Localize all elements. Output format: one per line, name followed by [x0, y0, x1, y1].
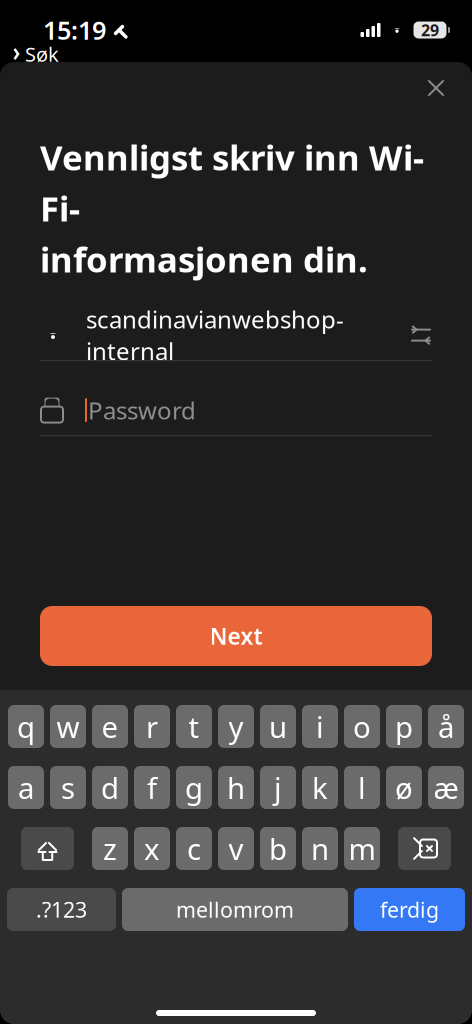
button[interactable]: r [134, 705, 170, 748]
staticText: s [61, 768, 75, 807]
staticText: z [103, 829, 117, 868]
staticText: m [348, 829, 375, 868]
button[interactable]: u [260, 705, 296, 748]
button[interactable]: y [218, 705, 254, 748]
staticText: x [144, 829, 160, 868]
staticText: u [269, 707, 287, 746]
staticText: Søk [25, 41, 59, 67]
staticText: 29 [421, 19, 439, 41]
button[interactable]: f [134, 766, 170, 809]
button[interactable]: l [344, 766, 380, 809]
staticText: a [18, 768, 34, 807]
staticText: y [228, 707, 243, 746]
button[interactable]: j [260, 766, 296, 809]
button[interactable]: i [302, 705, 338, 748]
staticText: å [438, 707, 454, 746]
staticText: h [227, 768, 245, 807]
staticText: q [17, 707, 35, 746]
staticText: æ [433, 768, 458, 807]
staticText: l [358, 768, 366, 807]
staticText: ferdig [380, 895, 439, 924]
button[interactable]: c [176, 827, 212, 870]
button[interactable]: t [176, 705, 212, 748]
staticText: e [101, 707, 118, 746]
staticText: j [274, 768, 282, 807]
staticText: .?123 [36, 895, 87, 924]
staticText: Next [209, 621, 262, 651]
staticText: b [269, 829, 287, 868]
staticText: v [228, 829, 243, 868]
button[interactable]: Skift [21, 827, 74, 870]
staticText: o [353, 707, 371, 746]
button[interactable]: v [218, 827, 254, 870]
button[interactable]: w [50, 705, 86, 748]
staticText: g [185, 768, 203, 807]
button[interactable]: h [218, 766, 254, 809]
button[interactable]: Next [40, 606, 432, 666]
button[interactable]: d [92, 766, 128, 809]
button[interactable]: Lukk [414, 66, 458, 110]
staticText: k [312, 768, 328, 807]
staticText: p [395, 707, 413, 746]
staticText: ø [395, 768, 413, 807]
button[interactable]: e [92, 705, 128, 748]
button[interactable]: mellomrom [122, 888, 348, 931]
button[interactable]: ferdig [354, 888, 465, 931]
staticText: 15:19 [43, 13, 106, 47]
staticText: mellomrom [176, 895, 294, 924]
staticText: scandinavianwebshop-internal [86, 303, 344, 367]
button[interactable]: m [344, 827, 380, 870]
staticText: f [147, 768, 157, 807]
button[interactable]: ø [386, 766, 422, 809]
staticText: n [311, 829, 329, 868]
button[interactable]: q [8, 705, 44, 748]
button[interactable]: p [386, 705, 422, 748]
staticText: c [187, 829, 201, 868]
staticText: Vennligst skriv inn Wi-Fi- informasjonen… [40, 134, 424, 282]
button[interactable]: k [302, 766, 338, 809]
staticText: r [146, 707, 158, 746]
button[interactable]: b [260, 827, 296, 870]
staticText: i [316, 707, 324, 746]
button[interactable]: z [92, 827, 128, 870]
button[interactable]: a [8, 766, 44, 809]
button[interactable]: g [176, 766, 212, 809]
button[interactable]: scandinavianwebshop-internal [40, 310, 432, 361]
button[interactable]: o [344, 705, 380, 748]
staticText: w [56, 707, 79, 746]
button[interactable]: s [50, 766, 86, 809]
staticText: t [188, 707, 199, 746]
button[interactable]: n [302, 827, 338, 870]
staticText: Password [88, 394, 196, 426]
button[interactable]: æ [428, 766, 464, 809]
button[interactable]: å [428, 705, 464, 748]
staticText: d [101, 768, 119, 807]
button[interactable]: Password [40, 385, 432, 436]
button[interactable]: x [134, 827, 170, 870]
button[interactable]: Slett [398, 827, 451, 870]
button[interactable]: .?123 [7, 888, 116, 931]
